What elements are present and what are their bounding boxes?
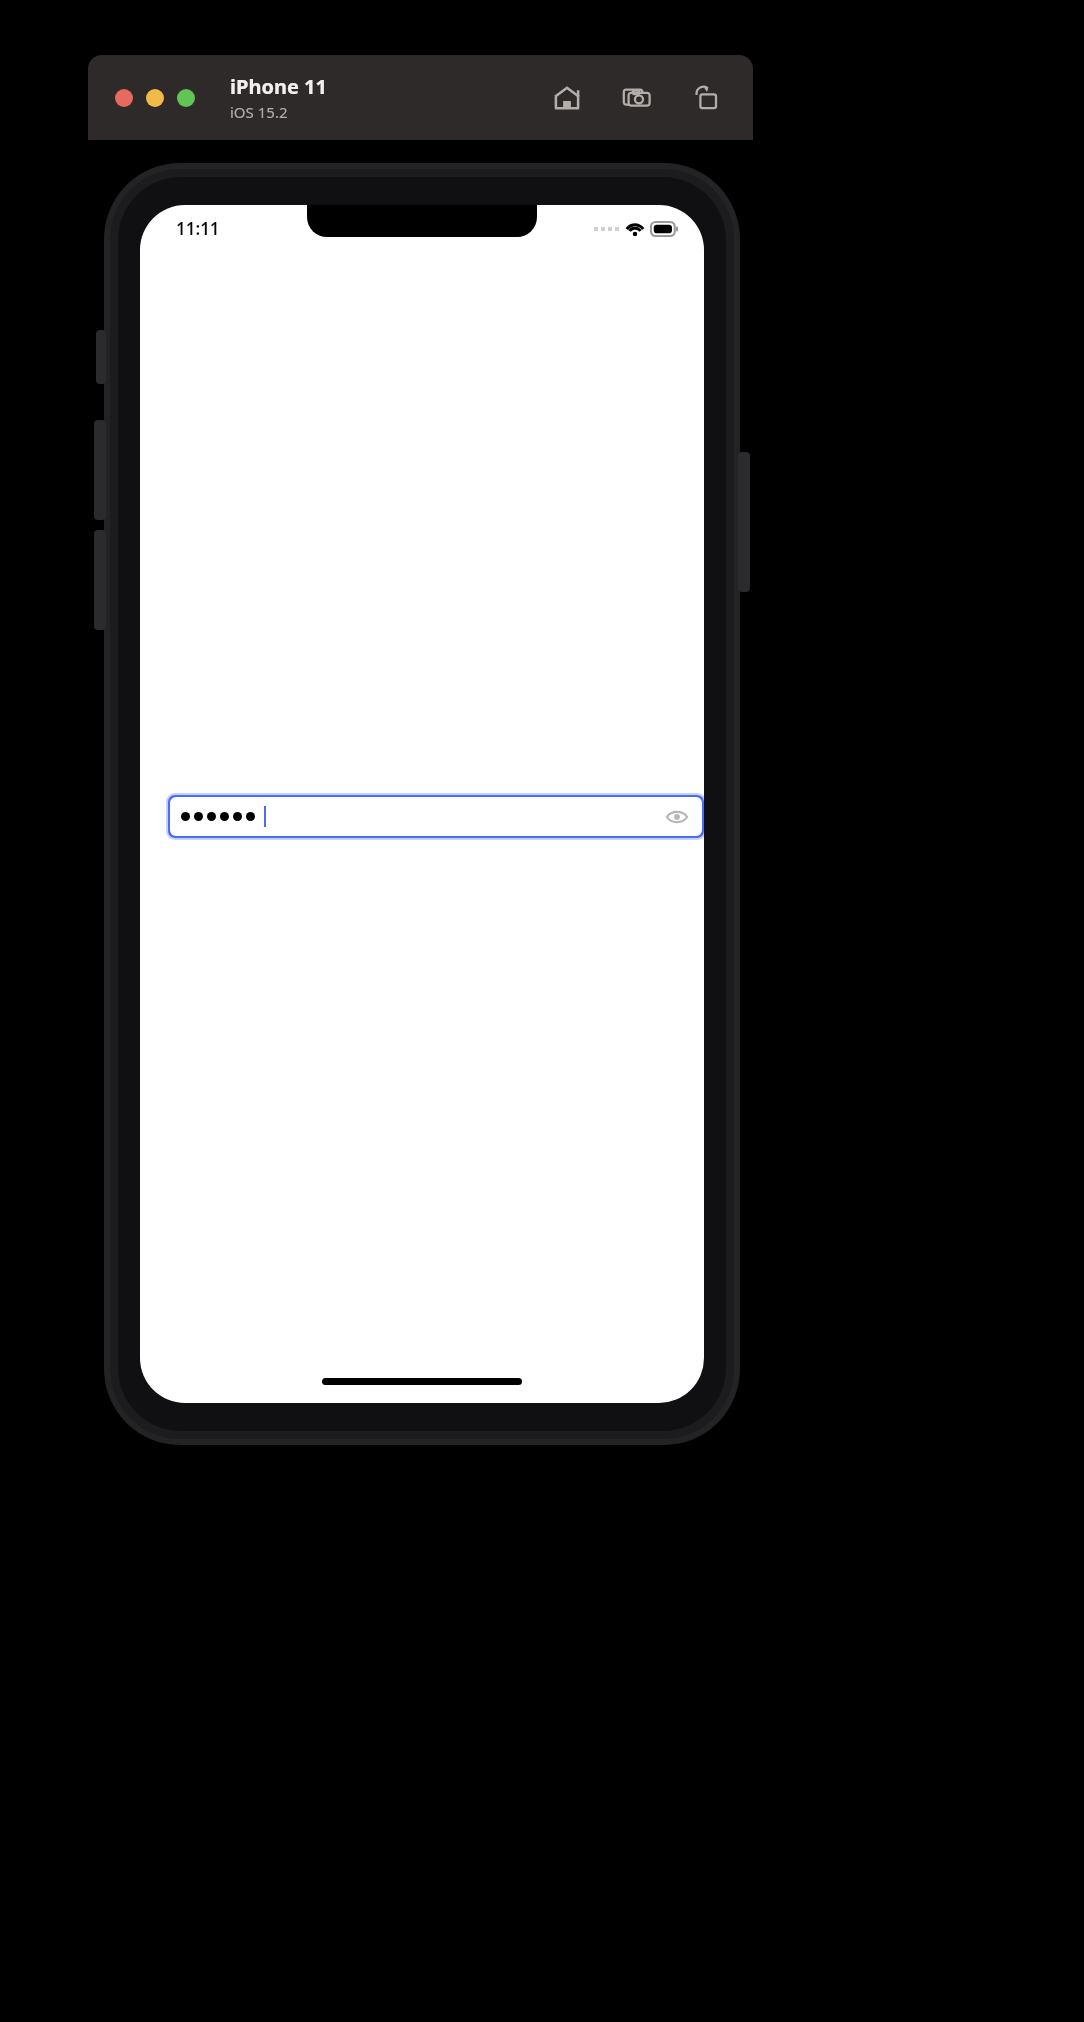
button[interactable]: Minimise [146, 89, 164, 107]
staticText: 11:11 [176, 217, 220, 240]
button[interactable]: Zoom [177, 89, 195, 107]
button[interactable]: Home [547, 78, 587, 118]
staticText: iOS 15.2 [230, 102, 288, 122]
button[interactable]: Close [115, 89, 133, 107]
button[interactable]: Rotate [687, 78, 727, 118]
button[interactable]: Screenshot [617, 78, 657, 118]
staticText: iPhone 11 [230, 73, 327, 100]
button[interactable]: Show password [170, 797, 702, 836]
button[interactable]: Show password [662, 802, 692, 832]
